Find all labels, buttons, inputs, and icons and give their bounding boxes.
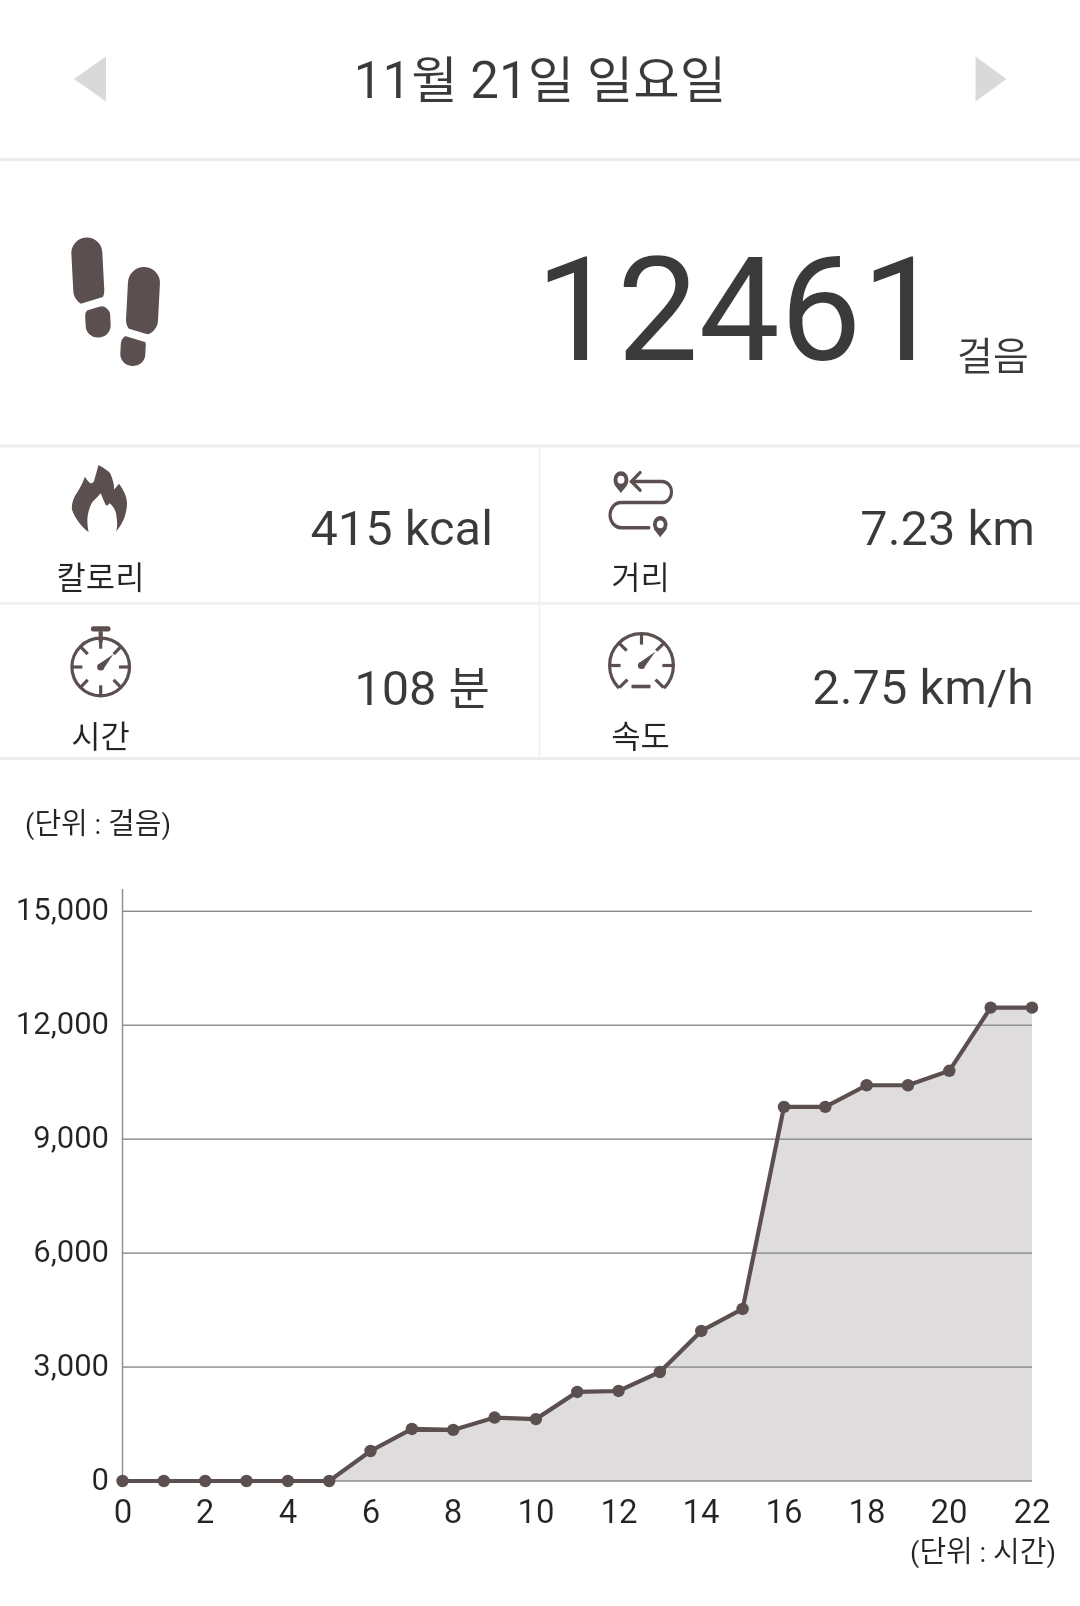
staticText: 11월 21일 일요일 [340,39,740,112]
staticText: 15,000 [0,891,109,927]
staticText: 18 [817,1492,917,1531]
staticText: 16 [734,1492,834,1531]
button[interactable]: Next day [930,38,1060,120]
staticText: (단위 : 시간) [656,1528,1056,1570]
staticText: 108 분 [90,653,490,718]
staticText: 9,000 [0,1119,109,1155]
staticText: 걸음 [957,325,1077,381]
staticText: 거리 [540,552,741,598]
staticText: 6,000 [0,1233,109,1269]
staticText: 칼로리 [0,552,201,598]
button[interactable]: Previous day [20,38,140,120]
staticText: 0 [0,1461,109,1497]
staticText: 22 [982,1492,1080,1531]
staticText: 415 kcal [93,500,493,557]
staticText: 10 [486,1492,586,1531]
staticText: 2.75 km/h [634,659,1034,716]
staticText: 14 [651,1492,751,1531]
staticText: 20 [899,1492,999,1531]
staticText: 0 [73,1492,173,1531]
staticText: 시간 [0,711,201,757]
staticText: 8 [403,1492,503,1531]
staticText: 2 [155,1492,255,1531]
staticText: 속도 [540,711,741,757]
staticText: 3,000 [0,1347,109,1383]
staticText: 12461 [491,225,943,395]
staticText: 6 [321,1492,421,1531]
staticText: 12,000 [0,1005,109,1041]
staticText: (단위 : 걸음) [25,800,425,842]
staticText: 7.23 km [635,500,1035,557]
staticText: 4 [238,1492,338,1531]
staticText: 12 [569,1492,669,1531]
